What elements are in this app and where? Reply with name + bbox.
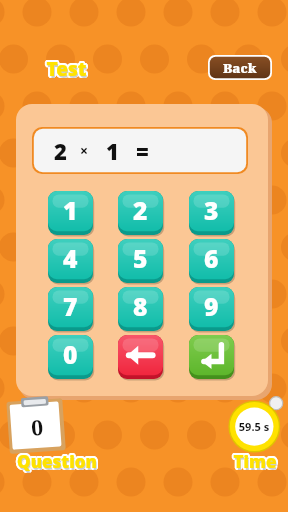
button[interactable] (48, 191, 93, 235)
button[interactable] (48, 335, 93, 379)
button[interactable]: Question count (6, 396, 68, 454)
button[interactable] (189, 287, 234, 331)
button[interactable]: Backspace (118, 335, 163, 379)
button[interactable] (48, 287, 93, 331)
button[interactable] (118, 239, 163, 283)
button[interactable] (189, 191, 234, 235)
button[interactable]: Enter (189, 335, 234, 379)
button[interactable] (189, 239, 234, 283)
button[interactable] (48, 239, 93, 283)
button[interactable] (118, 287, 163, 331)
button[interactable] (208, 55, 272, 80)
button[interactable]: Time remaining (228, 398, 284, 450)
button[interactable] (118, 191, 163, 235)
